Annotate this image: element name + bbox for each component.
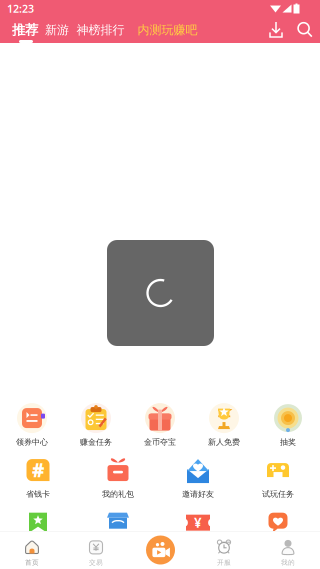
- button[interactable]: 推荐: [0, 17, 41, 43]
- button[interactable]: Search: [287, 17, 320, 43]
- staticText: 新游: [45, 23, 69, 37]
- button[interactable]: 新游: [41, 17, 72, 43]
- button[interactable]: Downloads: [256, 17, 287, 43]
- button[interactable]: ¥: [158, 507, 238, 553]
- staticText: 赚金任务: [80, 437, 112, 447]
- staticText: 推荐: [12, 22, 38, 38]
- staticText: 试玩任务: [262, 489, 294, 499]
- staticText: 抽奖: [280, 437, 296, 447]
- staticText: 邀请好友: [182, 489, 214, 499]
- staticText: 新人免费: [208, 437, 240, 447]
- staticText: 我的: [281, 558, 295, 567]
- button[interactable]: [238, 507, 318, 553]
- button[interactable]: 抽奖: [256, 397, 320, 453]
- button[interactable]: Publish video: [146, 535, 175, 564]
- staticText: #: [32, 458, 44, 482]
- button[interactable]: [0, 507, 78, 553]
- staticText: 开服: [217, 558, 231, 567]
- staticText: 12:23: [7, 1, 34, 16]
- staticText: 省钱卡: [26, 489, 50, 499]
- button[interactable]: 我的: [256, 535, 320, 569]
- button[interactable]: 我的礼包: [78, 454, 158, 500]
- staticText: 首页: [25, 558, 39, 567]
- button[interactable]: 邀请好友: [158, 454, 238, 500]
- staticText: 神榜排行: [76, 23, 124, 37]
- button[interactable]: #: [0, 454, 78, 500]
- staticText: 金币夺宝: [144, 437, 176, 447]
- button[interactable]: 首页: [0, 535, 64, 569]
- staticText: ¥: [194, 514, 202, 531]
- button[interactable]: 开服: [192, 535, 256, 569]
- button[interactable]: 内测玩赚吧: [128, 17, 203, 43]
- button[interactable]: 赚金任务: [64, 397, 128, 453]
- button[interactable]: 领券中心: [0, 397, 64, 453]
- button[interactable]: 新人免费: [192, 397, 256, 453]
- button[interactable]: 金币夺宝: [128, 397, 192, 453]
- staticText: 领券中心: [16, 437, 48, 447]
- staticText: 我的礼包: [102, 489, 134, 499]
- button[interactable]: 交易: [64, 535, 128, 569]
- staticText: 交易: [89, 558, 103, 567]
- button[interactable]: [78, 507, 158, 553]
- button[interactable]: 神榜排行: [72, 17, 128, 43]
- staticText: 内测玩赚吧: [137, 23, 197, 37]
- button[interactable]: 试玩任务: [238, 454, 318, 500]
